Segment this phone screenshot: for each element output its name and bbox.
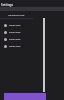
staticText: Some label — [9, 45, 21, 48]
staticText: Some label — [9, 38, 21, 41]
staticText: Account & sync — [8, 14, 25, 16]
staticText: Some label — [9, 24, 21, 27]
staticText: Some label — [9, 31, 21, 34]
staticText: Settings — [1, 3, 14, 7]
